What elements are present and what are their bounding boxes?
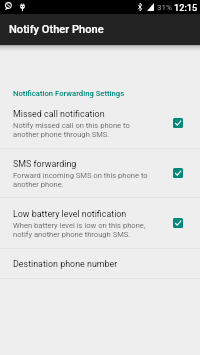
button[interactable]: Toggle setting <box>173 118 183 128</box>
staticText: 12:15 <box>174 2 198 13</box>
button[interactable]: Destination phone number <box>0 249 200 278</box>
button[interactable]: Low battery level notification <box>0 198 200 248</box>
staticText: SMS forwarding <box>13 159 77 169</box>
button[interactable]: Toggle setting <box>173 218 183 228</box>
staticText: Notify missed call on this phone to anot… <box>13 121 130 138</box>
staticText: Forward incoming SMS on this phone to an… <box>13 171 148 188</box>
staticText: Missed call notification <box>13 109 105 119</box>
staticText: Low battery level notification <box>13 209 127 219</box>
staticText: Notify Other Phone <box>9 23 104 36</box>
staticText: When battery level is low on this phone,… <box>13 221 146 238</box>
button[interactable]: Toggle setting <box>173 168 183 178</box>
button[interactable]: SMS forwarding <box>0 149 200 197</box>
staticText: 31% <box>157 3 172 12</box>
staticText: Notification Forwarding Settings <box>13 89 125 98</box>
button[interactable]: Missed call notification <box>0 98 200 148</box>
staticText: Destination phone number <box>13 259 118 269</box>
